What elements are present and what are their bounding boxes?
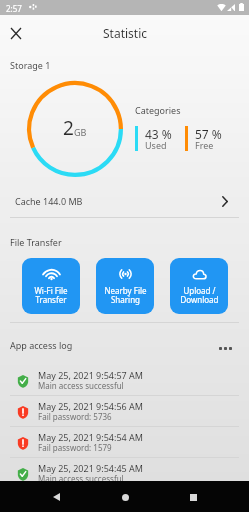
button[interactable]: Close xyxy=(2,19,30,47)
button[interactable]: Nearby File Sharing xyxy=(96,258,154,314)
staticText: 43 % xyxy=(145,126,172,142)
button[interactable]: May 25, 2021 9:54:56 AM xyxy=(0,396,249,426)
staticText: Nearby File Sharing xyxy=(104,285,147,306)
staticText: Categories xyxy=(135,104,181,116)
staticText: Upload / Download xyxy=(180,285,219,306)
staticText: May 25, 2021 9:54:54 AM xyxy=(38,431,143,443)
staticText: May 25, 2021 9:54:57 AM xyxy=(38,369,143,381)
staticText: Fail password: 5736 xyxy=(38,411,112,422)
button[interactable]: Cache 144.0 MB xyxy=(0,185,249,217)
staticText: App access log xyxy=(10,339,73,351)
staticText: Used xyxy=(145,139,167,151)
staticText: Statistic xyxy=(103,25,148,41)
button[interactable]: Back xyxy=(43,484,69,510)
button[interactable]: Wi-Fi File Transfer xyxy=(22,258,80,314)
staticText: Main access successful xyxy=(38,473,124,484)
button[interactable]: May 25, 2021 9:54:57 AM xyxy=(0,365,249,395)
button[interactable]: May 25, 2021 9:54:45 AM xyxy=(0,458,249,488)
button[interactable]: Upload / Download xyxy=(170,258,228,314)
staticText: 2 xyxy=(63,115,74,141)
staticText: Cache 144.0 MB xyxy=(15,195,83,207)
staticText: 57 % xyxy=(195,126,222,142)
button[interactable]: May 25, 2021 9:54:54 AM xyxy=(0,427,249,457)
button[interactable]: Home xyxy=(112,484,138,510)
staticText: Storage 1 xyxy=(10,59,51,71)
staticText: Wi-Fi File Transfer xyxy=(34,285,68,306)
staticText: Free xyxy=(195,139,214,151)
staticText: Main access successful xyxy=(38,380,124,391)
button[interactable]: More options xyxy=(214,337,236,359)
staticText: File Transfer xyxy=(10,236,62,248)
staticText: May 25, 2021 9:54:45 AM xyxy=(38,462,143,474)
staticText: Fail password: 1579 xyxy=(38,442,112,453)
staticText: GB xyxy=(74,126,87,138)
staticText: 2:57 xyxy=(6,3,22,14)
button[interactable]: Recents xyxy=(180,484,206,510)
staticText: May 25, 2021 9:54:56 AM xyxy=(38,400,143,412)
